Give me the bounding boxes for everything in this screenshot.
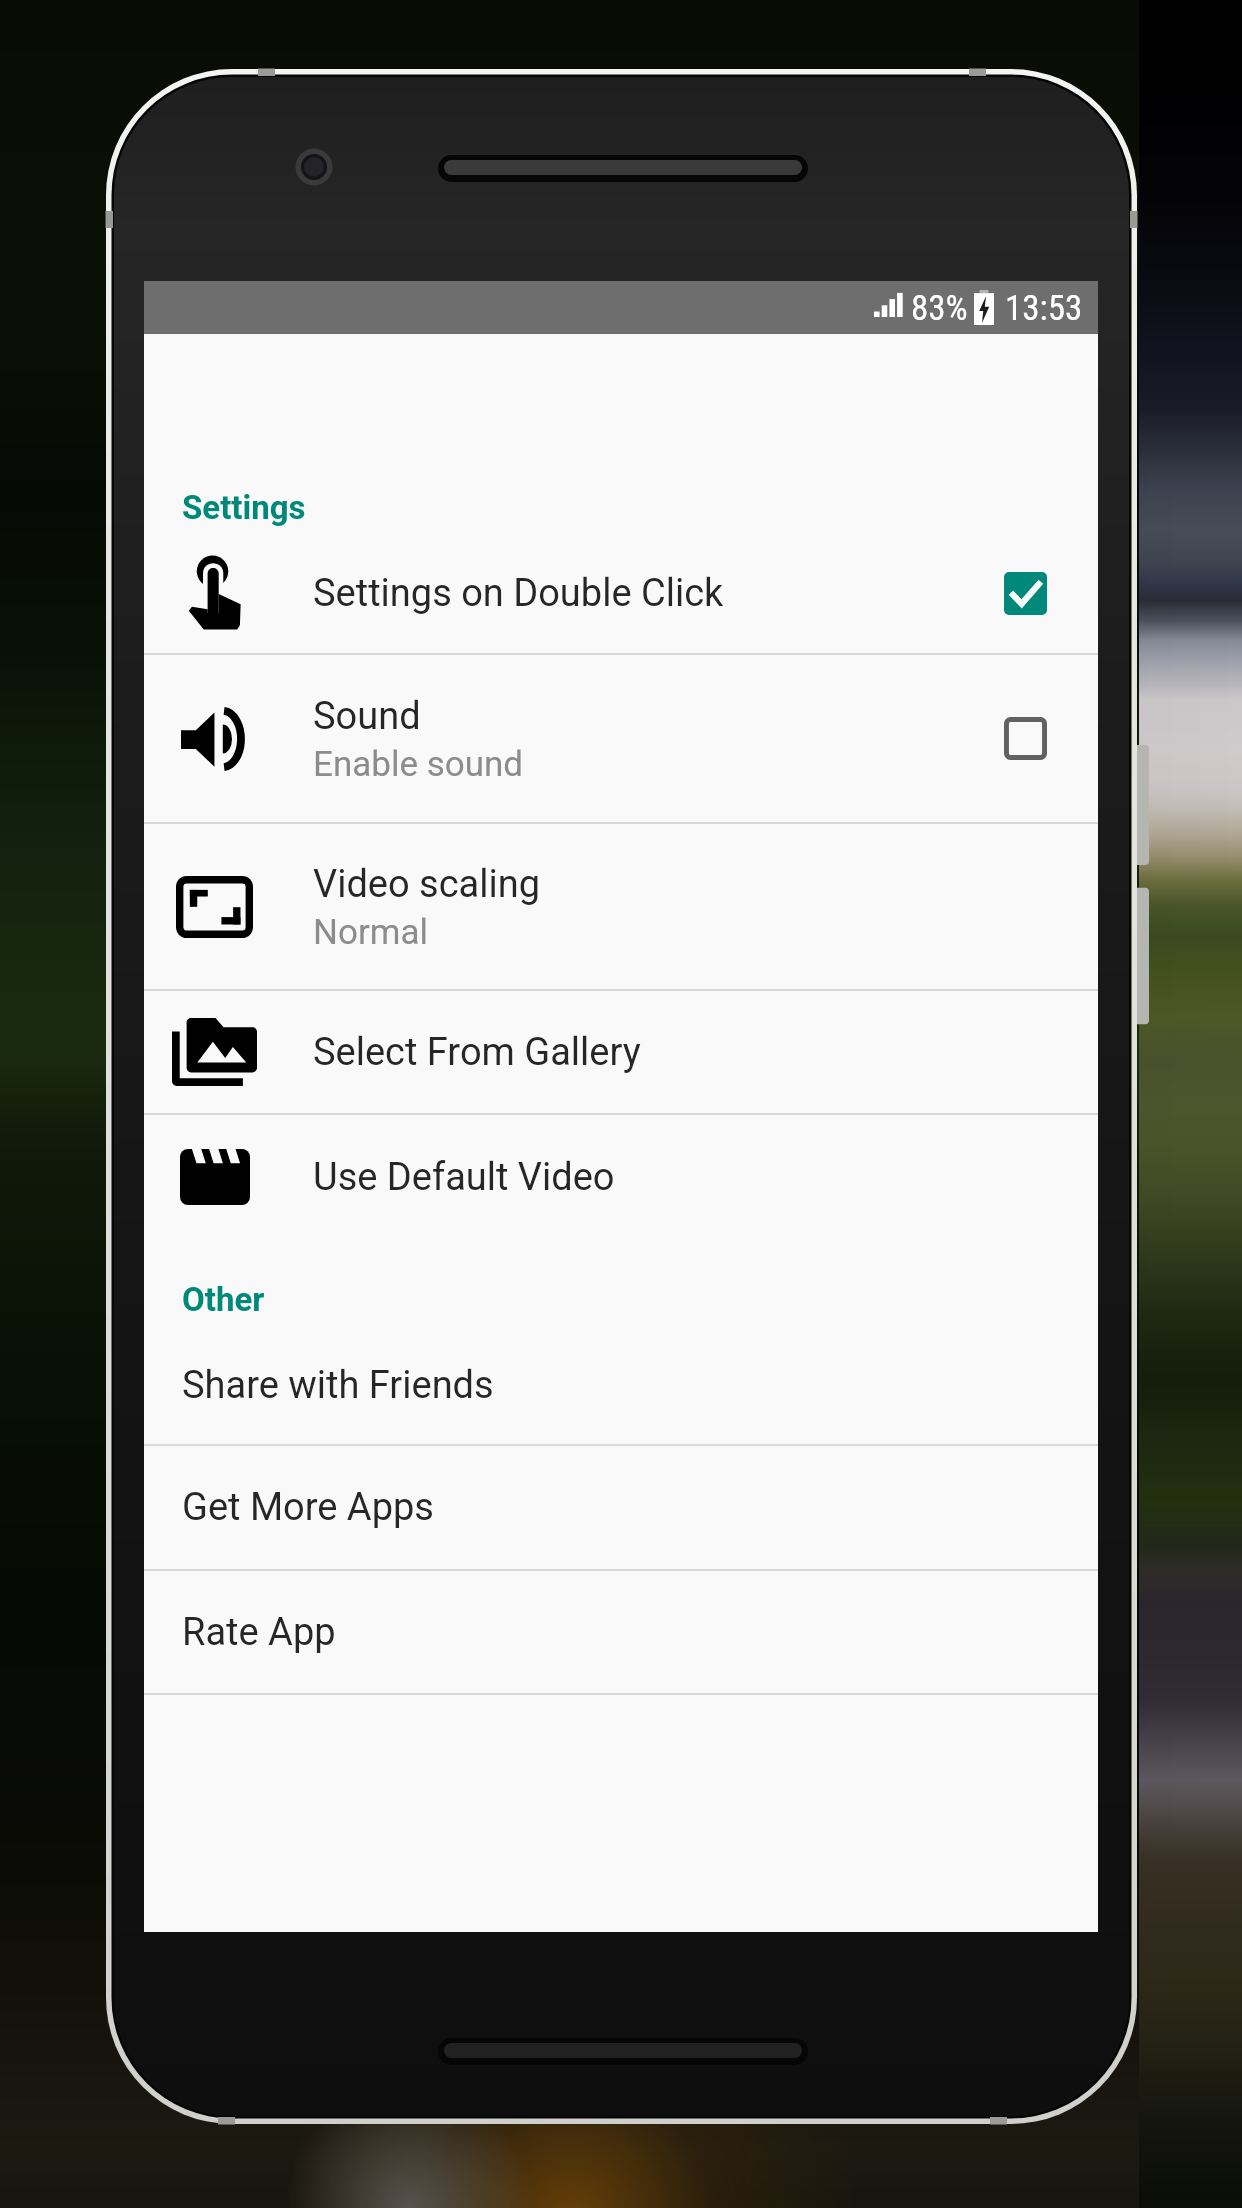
button[interactable]: Settings on Double Click [144, 534, 1098, 653]
staticText: Video scaling [313, 862, 541, 907]
staticText: 83% [911, 287, 968, 328]
staticText: Rate App [182, 1610, 336, 1655]
staticText: Normal [313, 911, 429, 952]
button[interactable]: Get More Apps [144, 1446, 1098, 1569]
button[interactable]: Share with Friends [144, 1326, 1098, 1444]
button[interactable]: Video scaling [144, 824, 1098, 989]
button[interactable]: Select From Gallery [144, 991, 1098, 1113]
staticText: Other [182, 1280, 265, 1319]
staticText: Get More Apps [182, 1485, 434, 1530]
staticText: Settings [182, 488, 306, 527]
staticText: Share with Friends [182, 1363, 494, 1408]
button[interactable]: Rate App [144, 1571, 1098, 1693]
button[interactable]: Use Default Video [144, 1115, 1098, 1239]
staticText: Sound [313, 694, 421, 739]
button[interactable]: Sound [144, 655, 1098, 822]
staticText: Select From Gallery [313, 1030, 641, 1075]
button[interactable]: Sound, disabled [1004, 717, 1047, 760]
staticText: Enable sound [313, 743, 524, 784]
button[interactable]: Settings on Double Click, enabled [1004, 572, 1047, 615]
staticText: Settings on Double Click [313, 571, 724, 616]
staticText: Use Default Video [313, 1155, 615, 1200]
staticText: 13:53 [1005, 287, 1083, 328]
